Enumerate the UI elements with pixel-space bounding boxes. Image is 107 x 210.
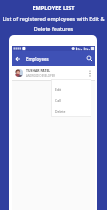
staticText: Employees	[26, 56, 49, 62]
staticText: TUSHAR PATEL	[26, 68, 51, 73]
button[interactable]: Call	[52, 95, 91, 106]
button[interactable]: Edit	[52, 84, 91, 95]
button[interactable]: More options	[85, 66, 95, 80]
staticText: EMPLOYEE LIST	[32, 4, 75, 12]
staticText: List of registered employees with Edit &…	[1, 15, 106, 33]
button[interactable]: TUSHAR PATEL	[12, 66, 95, 80]
button[interactable]: Delete	[52, 106, 91, 116]
staticText: Call	[55, 98, 61, 103]
button[interactable]: Back	[12, 51, 24, 66]
staticText: Edit	[55, 87, 62, 92]
staticText: ANDROID DEVELOPER	[26, 74, 56, 78]
staticText: Delete	[55, 109, 66, 114]
button[interactable]: Search	[83, 51, 95, 66]
